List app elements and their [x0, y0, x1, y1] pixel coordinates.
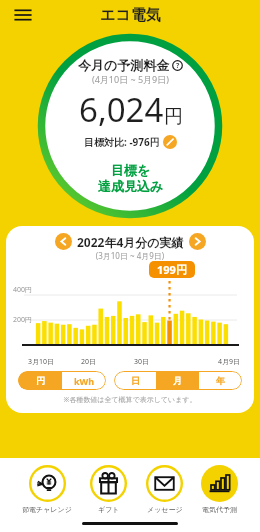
button[interactable]: 節電チャレンジ: [21, 465, 73, 514]
button[interactable]: Menu: [10, 2, 36, 28]
button[interactable]: Edit target: [163, 135, 177, 149]
staticText: ※各種数値は全て概算で表示しています。: [6, 395, 254, 405]
staticText: 200円: [13, 315, 33, 325]
staticText: 達成見込み: [98, 178, 164, 194]
staticText: (4月10日 ~ 5月9日): [92, 73, 169, 85]
staticText: ギフト: [98, 505, 120, 514]
staticText: 節電チャレンジ: [22, 505, 72, 514]
staticText: メッセージ: [147, 505, 183, 514]
button[interactable]: Help: [172, 60, 183, 71]
staticText: エコ電気: [100, 6, 161, 25]
button[interactable]: Previous month: [55, 233, 72, 250]
button[interactable]: ギフト: [89, 465, 128, 514]
staticText: kWh: [74, 375, 95, 387]
staticText: 4月9日: [187, 357, 240, 367]
button[interactable]: メッセージ: [145, 465, 184, 514]
button[interactable]: 月: [156, 371, 199, 390]
staticText: 6,024: [79, 87, 164, 132]
staticText: 今月の予測料金: [78, 57, 170, 73]
button[interactable]: 年: [199, 371, 242, 390]
staticText: 30日: [134, 357, 187, 367]
staticText: (3月10日 ~ 4月9日): [6, 250, 254, 261]
staticText: 円: [164, 105, 183, 129]
button[interactable]: kWh: [62, 371, 106, 390]
button[interactable]: 電気代予測: [200, 465, 239, 514]
staticText: 目標対比: -976円: [84, 135, 160, 149]
staticText: 20日: [81, 357, 134, 367]
staticText: ?: [176, 61, 180, 71]
staticText: 月: [173, 375, 182, 386]
staticText: 3月10日: [28, 357, 81, 367]
staticText: 円: [36, 375, 45, 386]
button[interactable]: 日: [114, 371, 156, 390]
staticText: 400円: [13, 285, 33, 295]
staticText: 日: [131, 375, 140, 386]
button[interactable]: 円: [18, 371, 62, 390]
staticText: 電気代予測: [202, 505, 237, 514]
staticText: 199円: [157, 262, 187, 277]
button[interactable]: Next month: [189, 233, 206, 250]
staticText: 年: [216, 375, 225, 386]
staticText: 2022年4月分の実績: [77, 234, 184, 250]
staticText: 目標を: [111, 162, 151, 178]
